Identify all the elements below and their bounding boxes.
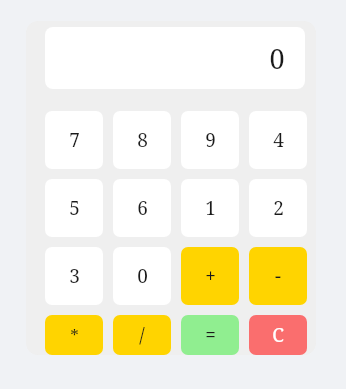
button[interactable]: 6 xyxy=(113,179,171,237)
button[interactable]: 5 xyxy=(45,179,103,237)
staticText: 5 xyxy=(69,195,80,221)
staticText: 3 xyxy=(69,263,80,289)
staticText: C xyxy=(272,322,284,348)
staticText: 6 xyxy=(137,195,148,221)
staticText: 8 xyxy=(137,127,148,153)
button[interactable]: 2 xyxy=(249,179,307,237)
staticText: 0 xyxy=(269,40,285,77)
button[interactable]: + xyxy=(181,247,239,305)
button[interactable]: = xyxy=(181,315,239,355)
staticText: - xyxy=(275,263,281,289)
staticText: = xyxy=(205,322,216,348)
staticText: 7 xyxy=(69,127,80,153)
staticText: / xyxy=(139,322,145,348)
button[interactable]: 4 xyxy=(249,111,307,169)
button[interactable]: * xyxy=(45,315,103,355)
staticText: 4 xyxy=(273,127,284,153)
staticText: 9 xyxy=(205,127,216,153)
button[interactable]: C xyxy=(249,315,307,355)
button[interactable]: 0 xyxy=(113,247,171,305)
button[interactable]: 7 xyxy=(45,111,103,169)
staticText: 0 xyxy=(137,263,148,289)
button[interactable]: 9 xyxy=(181,111,239,169)
staticText: * xyxy=(70,324,79,347)
staticText: 2 xyxy=(273,195,284,221)
staticText: 1 xyxy=(205,195,216,221)
button[interactable]: 8 xyxy=(113,111,171,169)
button[interactable]: - xyxy=(249,247,307,305)
button[interactable]: 1 xyxy=(181,179,239,237)
button[interactable]: / xyxy=(113,315,171,355)
staticText: + xyxy=(205,263,216,289)
button[interactable]: 3 xyxy=(45,247,103,305)
